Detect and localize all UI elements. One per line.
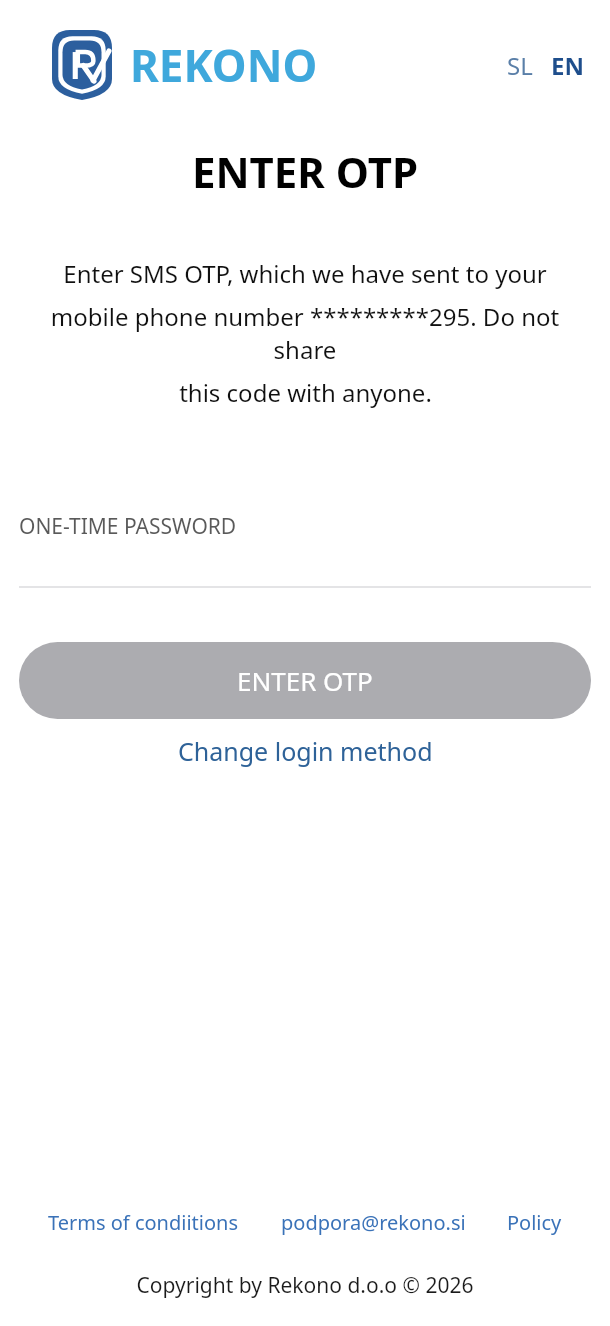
button[interactable]: Terms of condiitions [48, 1203, 239, 1242]
button[interactable]: SL [503, 43, 537, 88]
staticText: ENTER OTP [237, 663, 373, 698]
button[interactable]: Rekono logo [52, 30, 318, 100]
button[interactable]: Change login method [166, 728, 445, 774]
staticText: Enter SMS OTP, which we have sent to you… [63, 257, 547, 290]
button[interactable]: podpora@rekono.si [281, 1203, 466, 1242]
staticText: Change login method [178, 734, 433, 768]
button[interactable]: EN [547, 43, 588, 88]
staticText: ONE-TIME PASSWORD [19, 512, 237, 541]
staticText: REKONO [130, 35, 318, 95]
staticText: Copyright by Rekono d.o.o © 2026 [0, 1271, 610, 1300]
staticText: this code with anyone. [179, 376, 432, 409]
staticText: Terms of condiitions [48, 1209, 239, 1236]
staticText: Policy [507, 1209, 562, 1236]
button[interactable]: ONE-TIME PASSWORD [0, 512, 610, 588]
staticText: mobile phone number *********295. Do not… [20, 300, 590, 366]
staticText: EN [551, 49, 584, 82]
staticText: podpora@rekono.si [281, 1209, 466, 1236]
staticText: SL [507, 49, 533, 82]
button[interactable]: ENTER OTP [19, 642, 591, 719]
staticText: ENTER OTP [0, 143, 610, 200]
button[interactable]: Policy [507, 1203, 562, 1242]
